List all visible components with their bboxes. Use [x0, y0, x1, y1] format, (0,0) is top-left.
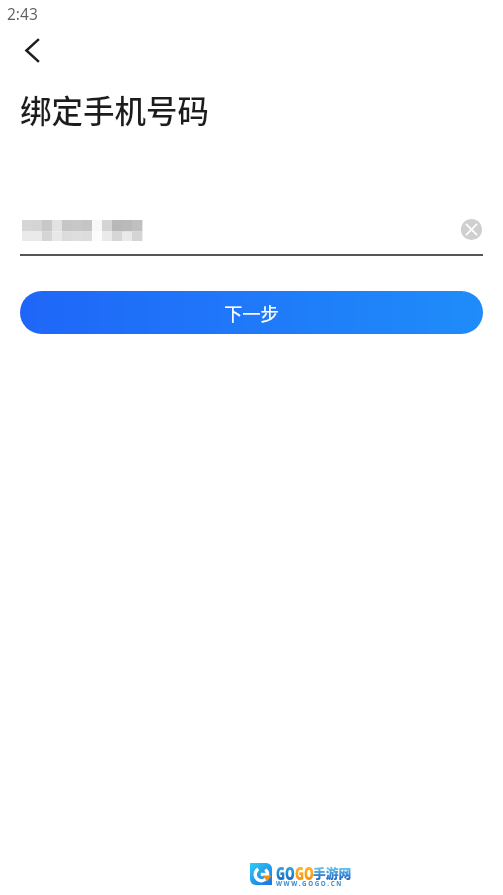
staticText: 2:43 [7, 3, 38, 24]
staticText: GO [295, 861, 314, 885]
staticText: 绑定手机号码 [20, 86, 210, 132]
button[interactable]: Clear text [456, 214, 487, 245]
staticText: W W W . G O G O . C N [276, 879, 342, 887]
staticText: GO [276, 861, 295, 885]
button[interactable]: 下一步 [20, 291, 483, 334]
staticText: 手游网 [313, 863, 352, 882]
staticText: 下一步 [224, 300, 279, 326]
button[interactable]: Back [4, 28, 50, 74]
